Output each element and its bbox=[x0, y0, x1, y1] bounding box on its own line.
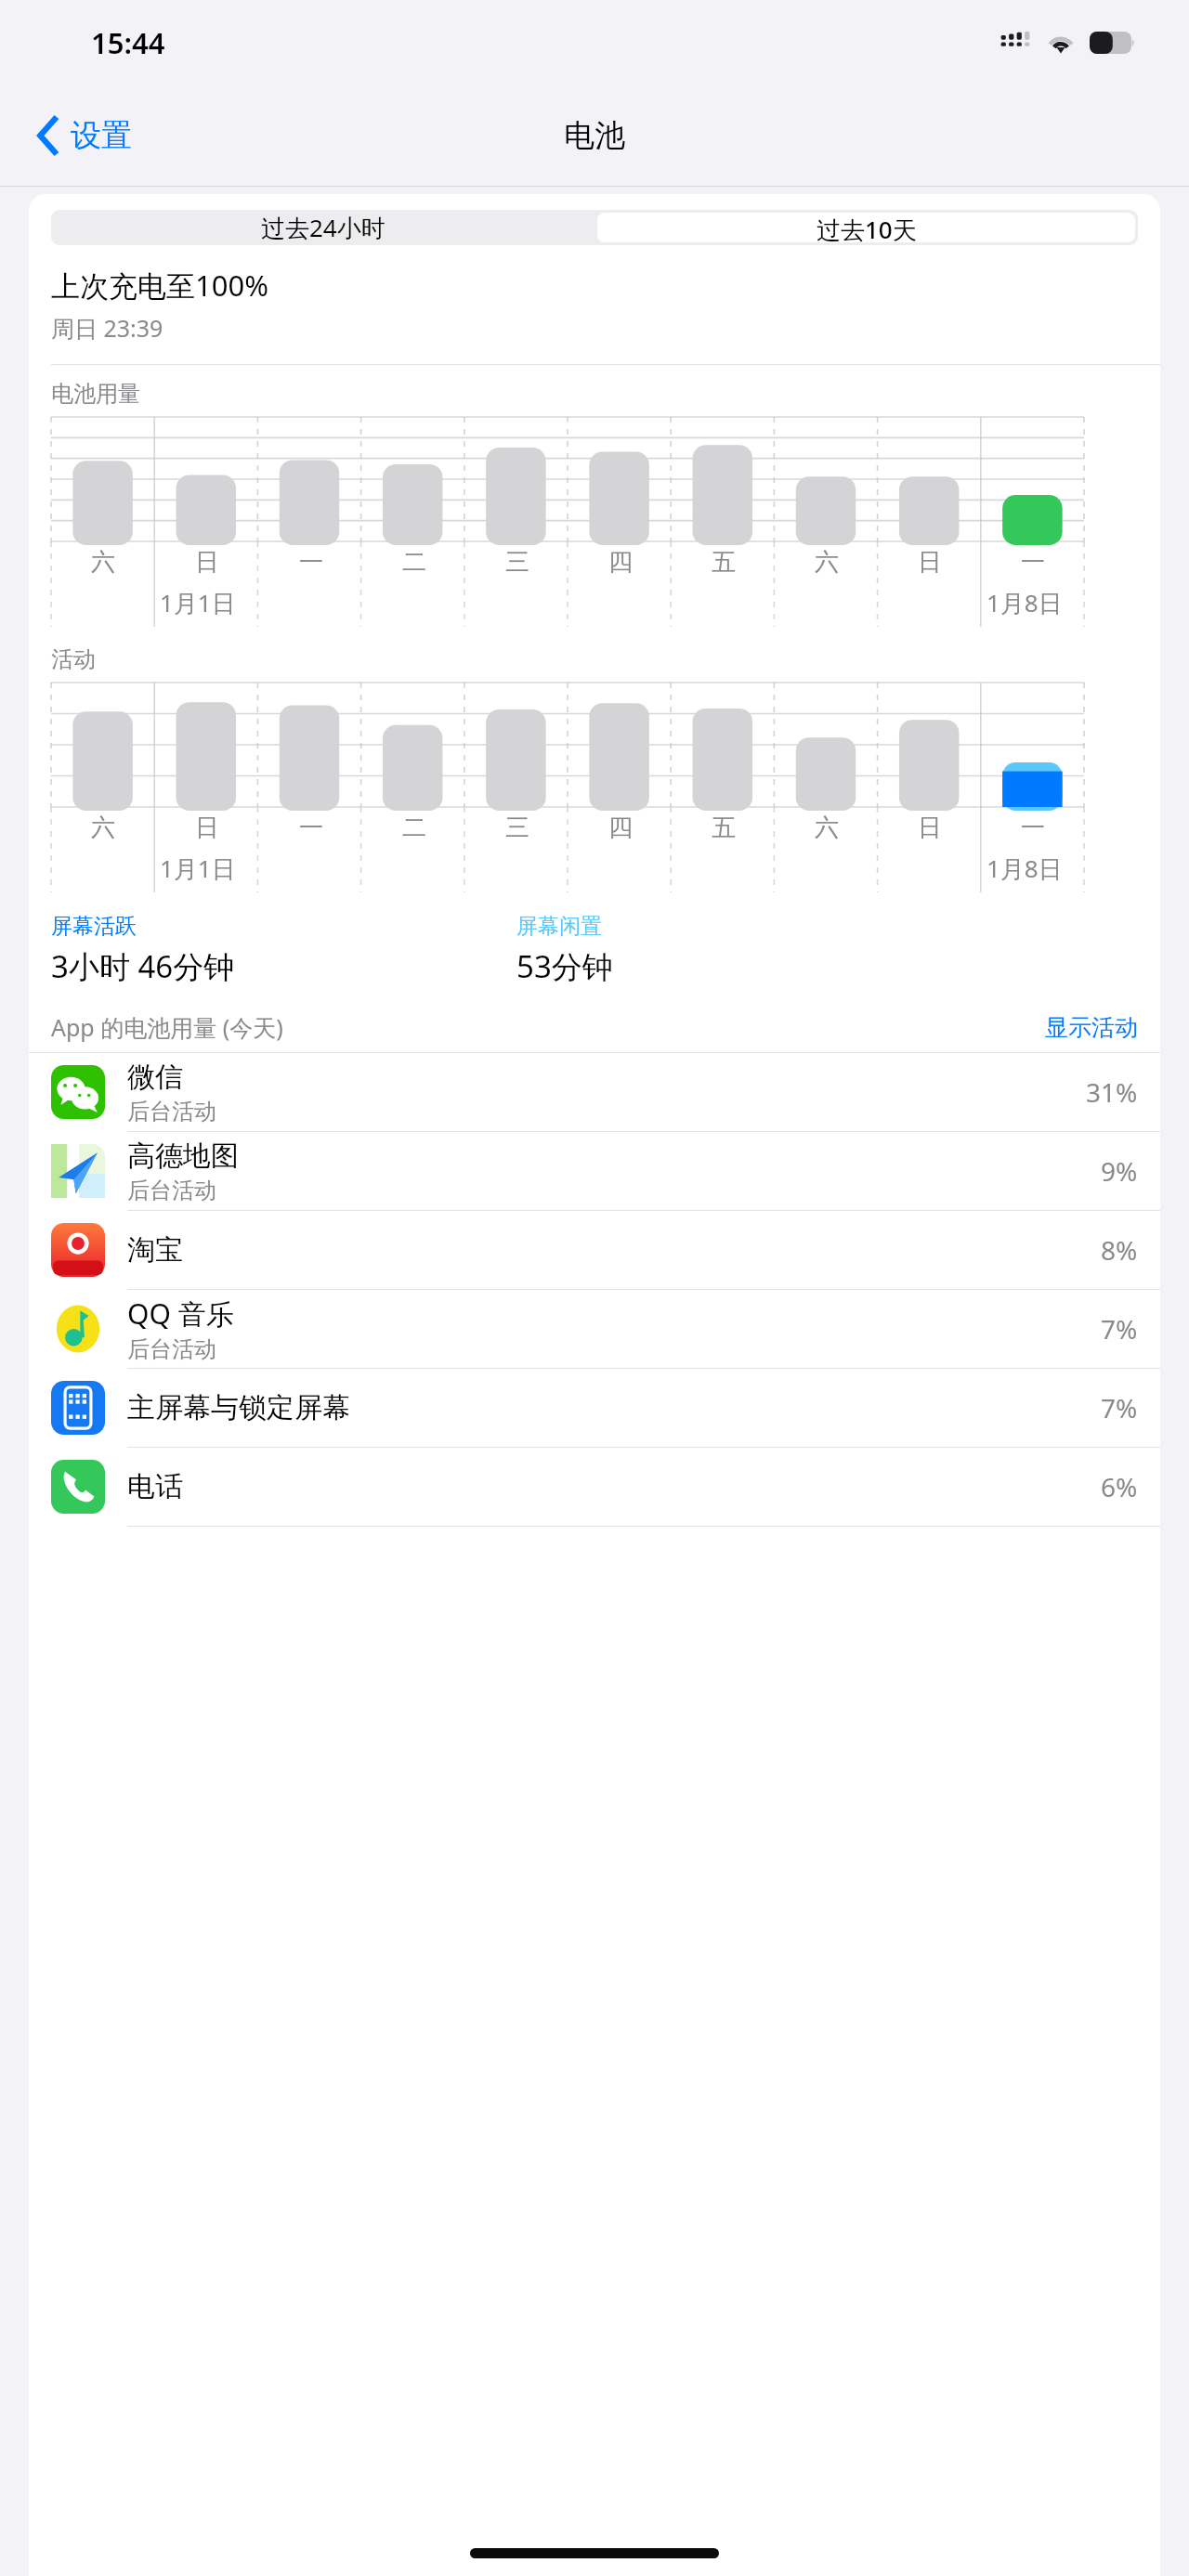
staticText: 六 bbox=[91, 547, 115, 578]
staticText: 7% bbox=[1101, 1311, 1138, 1347]
staticText: 9% bbox=[1101, 1153, 1138, 1189]
button[interactable]: QQ 音乐 bbox=[29, 1290, 1160, 1369]
button[interactable]: 过去24小时 bbox=[51, 210, 594, 245]
button[interactable]: 高德地图 bbox=[29, 1132, 1160, 1211]
staticText: 二 bbox=[402, 813, 426, 843]
staticText: 三 bbox=[505, 813, 529, 843]
staticText: 六 bbox=[815, 813, 839, 843]
staticText: 屏幕活跃 bbox=[51, 913, 137, 940]
staticText: 过去24小时 bbox=[261, 211, 385, 244]
staticText: 二 bbox=[402, 547, 426, 578]
button[interactable]: 微信 bbox=[29, 1053, 1160, 1132]
staticText: 1月8日 bbox=[986, 852, 1063, 885]
staticText: 1月8日 bbox=[986, 586, 1063, 619]
staticText: 六 bbox=[91, 813, 115, 843]
staticText: 上次充电至100% bbox=[51, 266, 268, 305]
staticText: 活动 bbox=[51, 645, 96, 673]
staticText: 五 bbox=[712, 813, 736, 843]
staticText: 后台活动 bbox=[127, 1177, 216, 1204]
staticText: 8% bbox=[1101, 1232, 1138, 1268]
button[interactable]: 设置 bbox=[32, 109, 139, 163]
staticText: 6% bbox=[1101, 1469, 1138, 1504]
staticText: 五 bbox=[712, 547, 736, 578]
staticText: 7% bbox=[1101, 1390, 1138, 1425]
button[interactable]: 过去10天 bbox=[597, 213, 1135, 242]
staticText: 三 bbox=[505, 547, 529, 578]
button[interactable]: 主屏幕与锁定屏幕 bbox=[29, 1369, 1160, 1448]
staticText: 15:44 bbox=[91, 23, 165, 62]
staticText: 后台活动 bbox=[127, 1335, 216, 1363]
staticText: 显示活动 bbox=[1045, 1013, 1138, 1042]
staticText: 1月1日 bbox=[160, 852, 236, 885]
staticText: 高德地图 bbox=[127, 1138, 239, 1174]
staticText: 一 bbox=[1021, 547, 1045, 578]
staticText: 日 bbox=[918, 813, 942, 843]
staticText: 一 bbox=[1021, 813, 1045, 843]
staticText: 四 bbox=[608, 813, 633, 843]
staticText: 电池 bbox=[564, 116, 625, 155]
staticText: 53分钟 bbox=[516, 945, 613, 987]
staticText: 过去10天 bbox=[817, 213, 917, 242]
staticText: 日 bbox=[195, 813, 219, 843]
staticText: 后台活动 bbox=[127, 1098, 216, 1125]
staticText: 微信 bbox=[127, 1060, 183, 1095]
staticText: 一 bbox=[299, 813, 323, 843]
staticText: 3小时 46分钟 bbox=[51, 945, 235, 987]
staticText: 日 bbox=[195, 547, 219, 578]
staticText: QQ 音乐 bbox=[127, 1295, 234, 1333]
staticText: 日 bbox=[918, 547, 942, 578]
staticText: 电话 bbox=[127, 1469, 183, 1504]
button[interactable]: 电话 bbox=[29, 1448, 1160, 1527]
button[interactable]: 淘宝 bbox=[29, 1211, 1160, 1290]
staticText: 淘宝 bbox=[127, 1232, 183, 1268]
staticText: 1月1日 bbox=[160, 586, 236, 619]
staticText: 屏幕闲置 bbox=[516, 913, 602, 940]
staticText: 六 bbox=[815, 547, 839, 578]
staticText: 一 bbox=[299, 547, 323, 578]
staticText: 周日 23:39 bbox=[51, 312, 163, 344]
staticText: 31% bbox=[1086, 1074, 1138, 1110]
staticText: App 的电池用量 (今天) bbox=[51, 1011, 283, 1043]
staticText: 四 bbox=[608, 547, 633, 578]
button[interactable]: 显示活动 bbox=[1045, 1013, 1138, 1042]
staticText: 电池用量 bbox=[51, 380, 140, 408]
staticText: 主屏幕与锁定屏幕 bbox=[127, 1390, 350, 1425]
staticText: 设置 bbox=[71, 116, 132, 155]
